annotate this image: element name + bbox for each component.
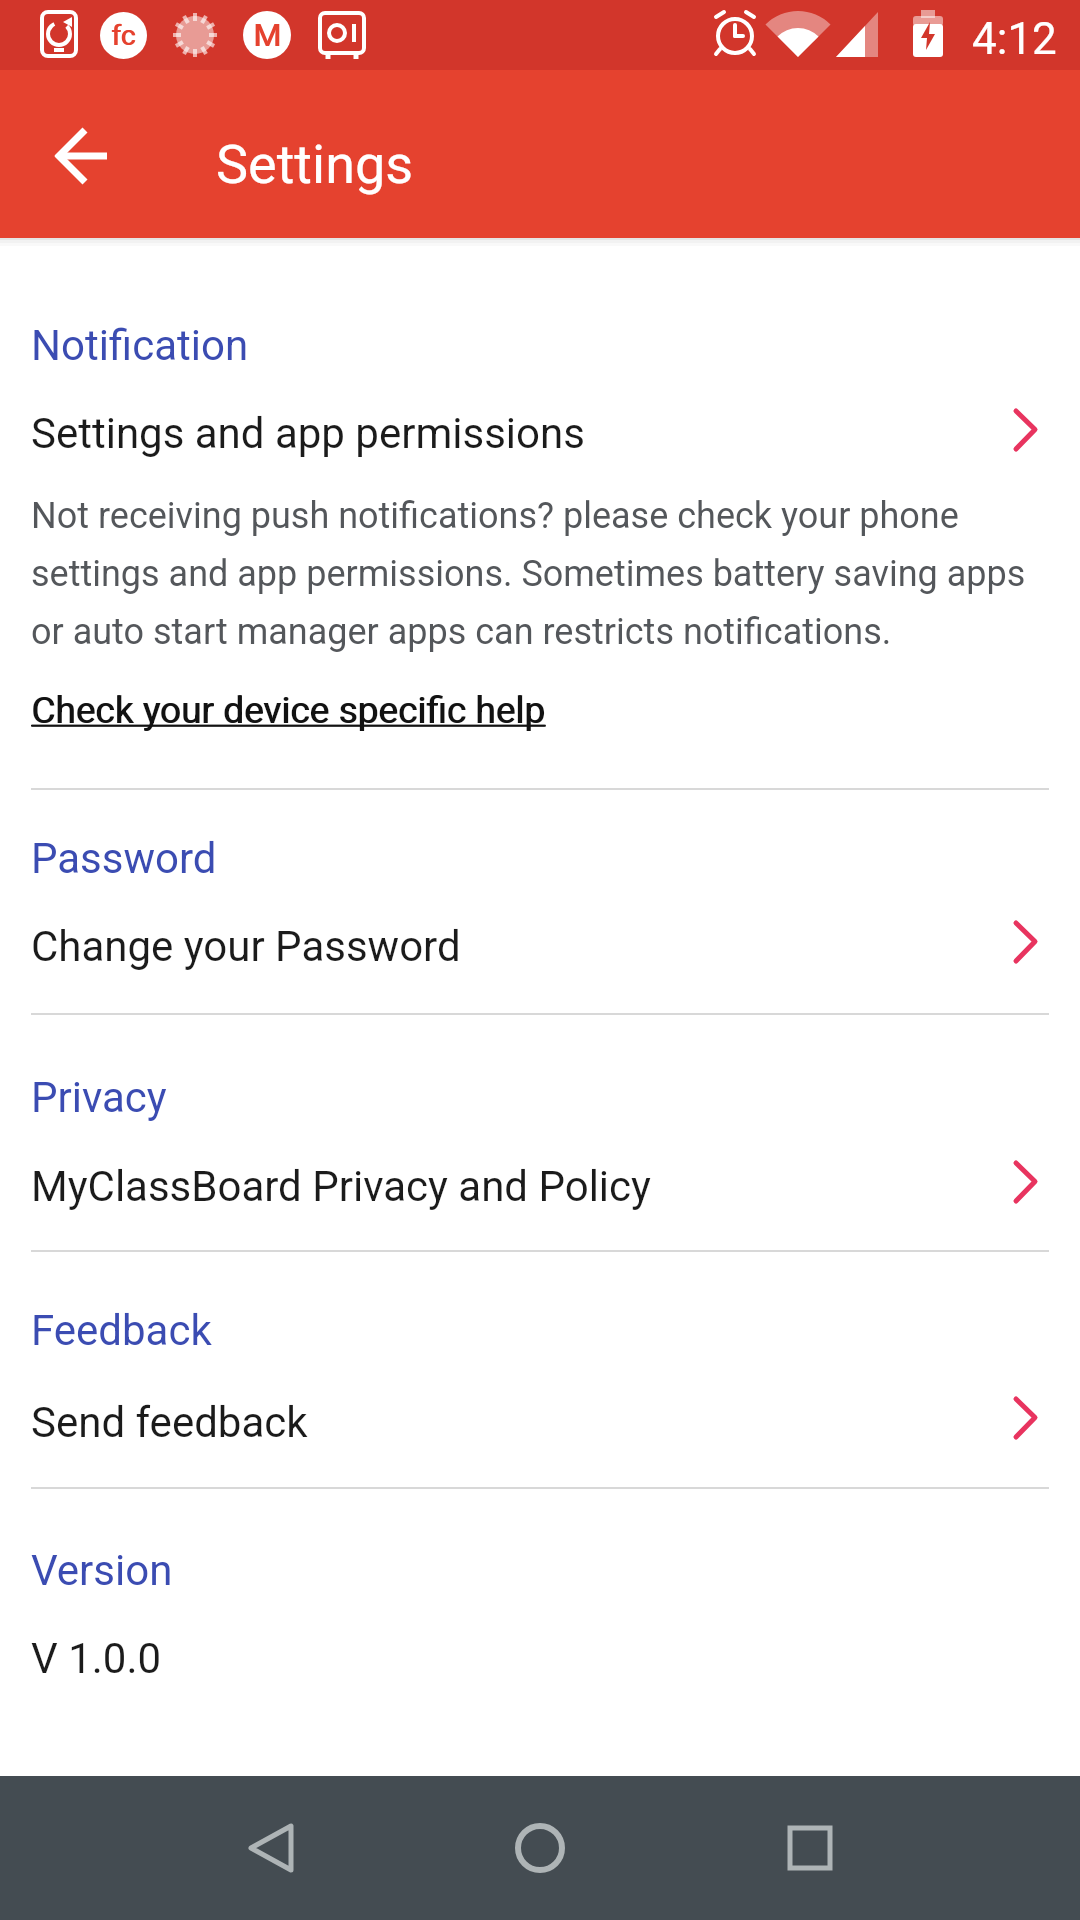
staticText: V 1.0.0 [31,1634,162,1683]
staticText: Check your device specific help [32,689,546,732]
staticText: Feedback [31,1306,212,1355]
staticText: Change your Password [31,922,461,971]
staticText: M [253,16,281,54]
staticText: M [254,16,282,54]
staticText: Send feedback [31,1398,308,1447]
staticText: Privacy [31,1073,167,1122]
staticText: Notification [31,321,249,370]
staticText: Settings and app permissions [31,409,585,458]
staticText: Settings [216,133,414,196]
staticText: 4:12 [972,13,1057,65]
button[interactable] [762,1800,858,1896]
button[interactable] [0,908,1080,986]
button[interactable] [0,1148,1080,1226]
staticText: Version [31,1546,173,1595]
button[interactable] [222,1800,318,1896]
button[interactable] [0,1384,1080,1462]
staticText: fc [111,19,136,52]
button[interactable] [492,1800,588,1896]
staticText: Check your device specific help [31,689,545,732]
staticText: Not receiving push notifications? please… [31,495,1026,653]
button[interactable] [34,106,134,206]
button[interactable] [0,395,1080,473]
staticText: MyClassBoard Privacy and Policy [31,1162,651,1211]
staticText: fc [112,19,137,52]
button[interactable]: Check your device specific help [31,689,545,732]
staticText: Password [31,834,217,883]
